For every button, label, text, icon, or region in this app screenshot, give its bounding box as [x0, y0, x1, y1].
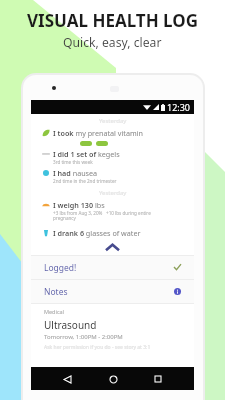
- staticText: I drank 6 glasses of water: [53, 228, 141, 238]
- staticText: 2nd time in the 2nd trimester: [53, 178, 117, 184]
- button[interactable]: Medical: [31, 304, 194, 351]
- staticText: Medical: [44, 308, 65, 315]
- staticText: Ultrasound: [44, 318, 97, 332]
- staticText: I took my prenatal vitamin: [53, 128, 143, 138]
- button[interactable]: Notes: [31, 280, 194, 303]
- staticText: 3rd time this week: [53, 159, 93, 165]
- staticText: Yesterday: [99, 189, 127, 197]
- staticText: Logged!: [44, 262, 77, 274]
- button[interactable]: I did 1 set of kegels: [31, 147, 194, 166]
- staticText: Yesterday: [99, 117, 127, 125]
- button[interactable]: I took my prenatal vitamin: [31, 126, 194, 147]
- button[interactable]: Recents: [148, 369, 168, 389]
- staticText: I did 1 set of kegels: [53, 149, 120, 159]
- staticText: Notes: [44, 286, 68, 298]
- button[interactable]: I drank 6 glasses of water: [31, 226, 194, 239]
- other: Logged: [174, 264, 181, 271]
- button[interactable]: I weigh 130 lbs: [31, 198, 194, 223]
- staticText: I had nausea: [53, 168, 98, 178]
- button[interactable]: Logged!: [31, 256, 194, 279]
- staticText: Quick, easy, clear: [63, 34, 162, 51]
- button[interactable]: Home: [103, 369, 123, 389]
- staticText: Tomorrow, 1:00PM - 2:00PM: [44, 333, 123, 341]
- other: Info: [174, 288, 181, 295]
- staticText: VISUAL HEALTH LOG: [27, 9, 199, 32]
- staticText: 12:30: [167, 101, 191, 113]
- button[interactable]: I had nausea: [31, 166, 194, 185]
- button[interactable]: Back: [57, 369, 77, 389]
- staticText: +3 lbs from Aug 3, 20% +10 lbs during en…: [53, 210, 151, 222]
- staticText: I weigh 130 lbs: [53, 200, 105, 210]
- staticText: Ask her permission if you do - see story…: [44, 344, 151, 351]
- button[interactable]: Collapse: [31, 239, 194, 255]
